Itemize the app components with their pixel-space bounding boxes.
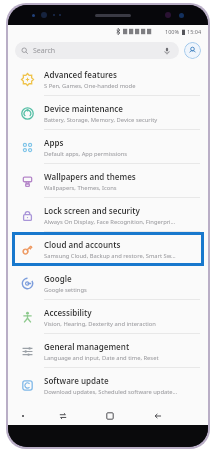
button[interactable]: Lock screen and security — [8, 198, 208, 232]
staticText: Download updates, Scheduled software upd… — [44, 388, 178, 396]
button[interactable]: Wallpapers and themes — [8, 164, 208, 198]
staticText: Advanced features — [44, 69, 117, 80]
button[interactable]: Device maintenance — [8, 96, 208, 130]
staticText: Wallpapers and themes — [44, 171, 136, 182]
staticText: Accessibility — [44, 307, 92, 318]
staticText: Battery, Storage, Memory, Device securit… — [44, 116, 158, 124]
button[interactable]: Home — [102, 408, 118, 424]
staticText: 15:04 — [187, 28, 202, 35]
staticText: Always On Display, Face Recognition, Fin… — [44, 218, 176, 226]
staticText: Software update — [44, 375, 109, 386]
staticText: Language and input, Date and time, Reset — [44, 354, 159, 362]
button[interactable]: Software update — [8, 368, 208, 402]
staticText: Search — [33, 46, 56, 56]
staticText: Apps — [44, 137, 64, 148]
button[interactable]: Google — [8, 266, 208, 300]
button[interactable]: Accessibility — [8, 300, 208, 334]
button[interactable]: Voice search — [161, 45, 173, 57]
button[interactable]: Advanced features — [8, 62, 208, 96]
staticText: Google settings — [44, 286, 87, 294]
button[interactable]: Back — [150, 408, 166, 424]
staticText: Samsung Cloud, Backup and restore, Smart… — [44, 252, 176, 260]
staticText: General management — [44, 341, 130, 352]
button[interactable]: Apps — [8, 130, 208, 164]
staticText: Vision, Hearing, Dexterity and interacti… — [44, 320, 156, 328]
staticText: Google — [44, 273, 72, 284]
staticText: Cloud and accounts — [44, 239, 121, 250]
button[interactable]: Cloud and accounts — [8, 232, 208, 266]
staticText: Lock screen and security — [44, 205, 140, 216]
staticText: Wallpapers, Themes, Icons — [44, 184, 117, 192]
staticText: Device maintenance — [44, 103, 124, 114]
staticText: S Pen, Games, One-handed mode — [44, 82, 136, 90]
staticText: 100% — [165, 28, 180, 35]
button[interactable]: Recents — [55, 408, 71, 424]
button[interactable]: General management — [8, 334, 208, 368]
staticText: Default apps, App permissions — [44, 150, 128, 158]
button[interactable]: Search — [15, 42, 179, 59]
button[interactable]: Account — [184, 42, 201, 59]
